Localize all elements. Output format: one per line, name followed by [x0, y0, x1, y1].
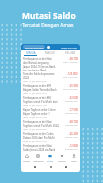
staticText: Pembayaran order #99 Kaufmann	[23, 84, 59, 88]
staticText: SEMUA	[26, 51, 36, 55]
staticText: Tagihan untuk Pio Mufti dari	[23, 100, 58, 104]
staticText: Pembayaran order Cokro Bank	[23, 132, 59, 136]
button[interactable]: Pembayaran order Nasi Goreng	[21, 119, 80, 131]
staticText: sejak 11 Jan 2024 19:12	[23, 92, 47, 95]
button[interactable]: SEMUA	[21, 50, 40, 56]
staticText: Saldo 851.400	[61, 46, 77, 49]
button[interactable]: Recents	[65, 166, 67, 168]
staticText: Transaksi	[33, 159, 44, 162]
button[interactable]: Semua Transaksi	[23, 45, 45, 49]
staticText: Tagihan untuk Pio Mufti 2024	[23, 124, 59, 128]
staticText: Saldo	[47, 159, 54, 162]
staticText: Sisa 1.070.700	[63, 76, 78, 79]
staticText: Bayar Tagihan order Cokro	[23, 108, 56, 112]
button[interactable]: Pembayaran order Nasi Goreng #1	[21, 56, 80, 71]
staticText: Home	[23, 159, 30, 162]
staticText: Sisa 982.800	[65, 100, 78, 103]
staticText: Sisa 965.300	[65, 112, 78, 115]
staticText: Sisa 838.600	[65, 148, 78, 151]
staticText: -68.700	[69, 120, 78, 124]
staticText: Akun	[71, 159, 77, 162]
button[interactable]: Home	[21, 152, 32, 163]
button[interactable]: Pembayaran order Nasi Goreng	[21, 143, 80, 152]
staticText: Pembayaran order #60 Kaufmann	[23, 96, 59, 100]
staticText: sejak 10 Jan 2024 09:33	[23, 128, 47, 131]
staticText: -52.000	[69, 96, 78, 100]
staticText: sejak 11 Jan 2024 11:40	[23, 104, 47, 107]
staticText: Sisa 851.400	[65, 136, 78, 139]
staticText: sejak 09 Jan 2024 21:15	[23, 140, 47, 143]
staticText: Pembayaran order Nasi Goreng	[23, 144, 59, 148]
staticText: -12.800	[69, 144, 78, 148]
staticText: dari Bisma Langsung Hermawan	[23, 61, 59, 65]
staticText: Bayar Tagihan order 1 Tersedia	[23, 112, 59, 116]
staticText: Transfer Saldo kepesanan fasa	[23, 72, 59, 76]
staticText: Bagian Saldo Tersedia Bank	[23, 88, 57, 92]
staticText: -17.500	[69, 108, 78, 112]
staticText: Tercatat Dengan Aman	[22, 22, 74, 29]
button[interactable]: Bayar Tagihan order Cokro	[21, 107, 80, 119]
staticText: Pembayaran order Nasi Goreng #1	[23, 57, 59, 61]
staticText: Dalam 2024 dari Pio Mufti	[23, 136, 55, 140]
staticText: 2024	[23, 76, 29, 80]
button[interactable]: Akun	[68, 152, 80, 163]
staticText: KELUAR	[65, 51, 76, 55]
button[interactable]: KELUAR	[60, 50, 80, 56]
button[interactable]: Pembayaran order #99 Kaufmann	[21, 83, 80, 95]
staticText: Mutasi Saldo	[22, 10, 76, 21]
staticText: Semua Transaksi	[25, 46, 44, 49]
staticText: -125.000	[67, 72, 78, 76]
button[interactable]: Donasi	[56, 152, 68, 163]
button[interactable]: Pembayaran order #60 Kaufmann	[21, 95, 80, 107]
staticText: Saldo Jenius 2024 via Bank	[23, 148, 56, 152]
button[interactable]: Filter	[47, 46, 50, 49]
staticText: MASUK	[45, 51, 55, 55]
staticText: -35.900	[69, 84, 78, 88]
staticText: Sisa 1.034.800	[63, 88, 78, 91]
button[interactable]: Transaksi	[32, 152, 44, 163]
button[interactable]: Pembayaran order Cokro Bank	[21, 131, 80, 143]
staticText: Sisa 896.600	[65, 124, 78, 127]
staticText: Pembayaran order Nasi Goreng	[23, 120, 59, 124]
staticText: sejak 12 Jan 2024 07:50	[23, 80, 47, 83]
staticText: -68.700	[69, 57, 78, 61]
staticText: Jaipur 2024-19 Jenius Bank	[23, 65, 56, 69]
staticText: sejak 10 Jan 2024 17:02	[23, 116, 47, 119]
button[interactable]: Saldo	[44, 152, 56, 163]
button[interactable]: MASUK	[40, 50, 60, 56]
button[interactable]: Back	[34, 166, 36, 168]
staticText: Donasi	[58, 159, 66, 162]
button[interactable]: Transfer Saldo kepesanan fasa	[21, 71, 80, 83]
staticText: -45.200	[69, 132, 78, 136]
staticText: ayu via Jenius Bank	[23, 69, 47, 71]
staticText: Sisa 1.195.700	[63, 61, 78, 64]
